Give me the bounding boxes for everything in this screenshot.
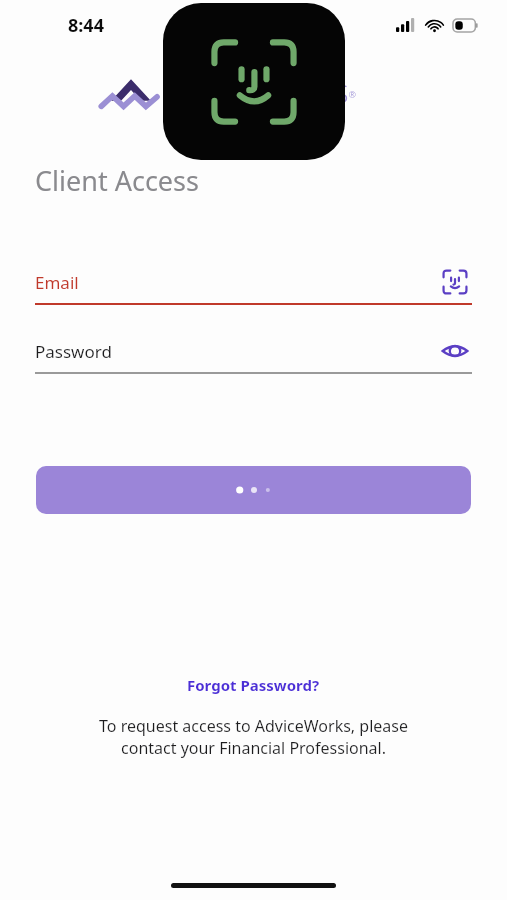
button[interactable]: Password — [35, 330, 472, 374]
staticText: Email — [35, 271, 79, 294]
staticText: 8:44 — [68, 13, 104, 38]
staticText: ADVICEWORKS® — [166, 75, 356, 110]
staticText: Forgot Password? — [187, 675, 320, 695]
staticText: Password — [35, 340, 112, 363]
button[interactable]: Show password — [438, 334, 472, 368]
other: Face ID authentication — [163, 3, 345, 160]
button[interactable]: Forgot Password? — [179, 671, 328, 699]
staticText: To request access to AdviceWorks, please… — [24, 715, 483, 759]
button[interactable] — [36, 466, 471, 514]
button[interactable]: Email — [35, 261, 472, 305]
staticText: Client Access — [35, 162, 199, 199]
button[interactable]: Sign in with Face ID — [438, 265, 472, 299]
